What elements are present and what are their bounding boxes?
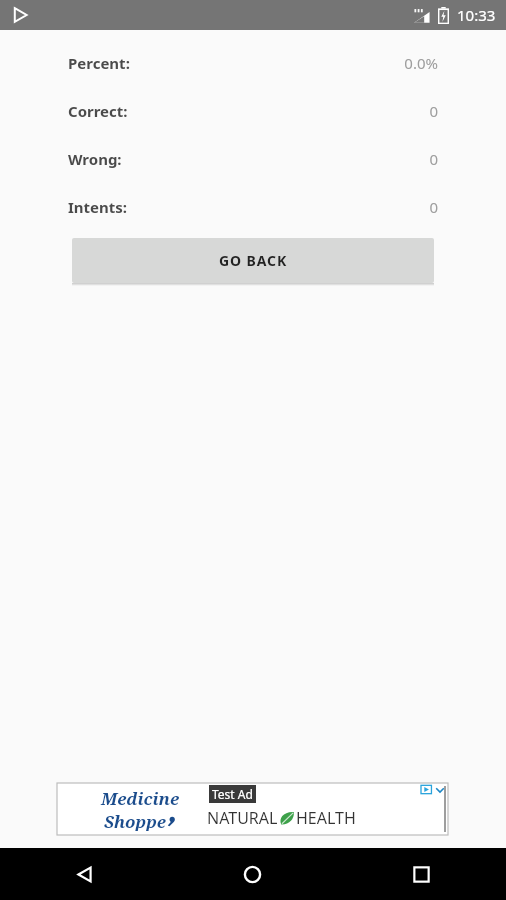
- other: Play Store notification: [10, 5, 30, 25]
- staticText: 10:33: [457, 5, 496, 25]
- button[interactable]: Home: [168, 848, 337, 900]
- other: Close ad: [435, 785, 445, 795]
- button[interactable]: Wrong:: [0, 135, 506, 183]
- button[interactable]: Medicine: [57, 783, 448, 835]
- staticText: Percent:: [68, 53, 130, 73]
- staticText: HEALTH: [296, 807, 356, 829]
- other: AdChoices: [421, 784, 432, 795]
- staticText: Correct:: [68, 101, 128, 121]
- button[interactable]: Back: [0, 848, 168, 900]
- staticText: GO BACK: [219, 251, 288, 270]
- staticText: Intents:: [68, 197, 128, 217]
- staticText: Test Ad: [212, 786, 253, 802]
- button[interactable]: GO BACK: [72, 238, 434, 283]
- staticText: Shoppe: [104, 810, 166, 831]
- button[interactable]: Percent:: [0, 39, 506, 87]
- staticText: NATURAL: [207, 807, 278, 829]
- button[interactable]: Correct:: [0, 87, 506, 135]
- button[interactable]: Recent apps: [337, 848, 506, 900]
- staticText: 0: [429, 101, 438, 121]
- staticText: 0.0%: [404, 53, 438, 73]
- staticText: Medicine: [101, 787, 180, 810]
- staticText: 0: [429, 149, 438, 169]
- staticText: 0: [429, 197, 438, 217]
- staticText: Wrong:: [68, 149, 122, 169]
- button[interactable]: Intents:: [0, 183, 506, 231]
